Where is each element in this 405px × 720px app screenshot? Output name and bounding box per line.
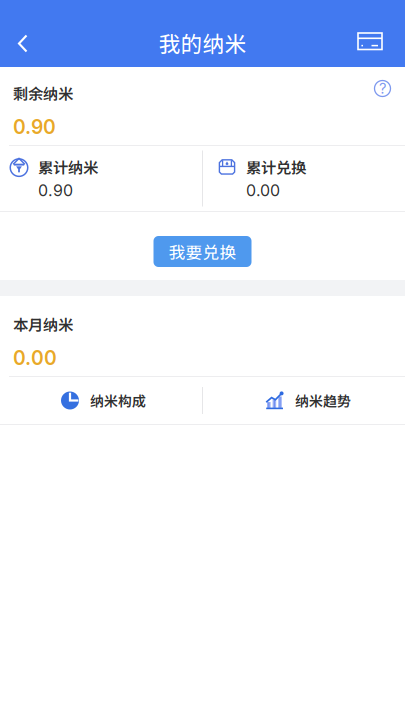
- button[interactable]: 累计兑换: [203, 146, 404, 211]
- staticText: 0.90: [13, 115, 56, 139]
- button[interactable]: Help: [374, 67, 391, 97]
- button[interactable]: 纳米趋势: [203, 377, 405, 424]
- staticText: 0.00: [13, 346, 57, 370]
- staticText: 我要兑换: [168, 239, 236, 263]
- button[interactable]: 纳米构成: [0, 377, 202, 424]
- staticText: ?: [379, 80, 386, 97]
- staticText: 累计兑换: [246, 156, 306, 178]
- staticText: 我的纳米: [158, 27, 246, 58]
- staticText: 累计纳米: [38, 156, 98, 178]
- button[interactable]: Back: [0, 0, 46, 67]
- staticText: 本月纳米: [13, 313, 73, 335]
- staticText: 纳米构成: [90, 390, 146, 411]
- button[interactable]: 我要兑换: [153, 236, 251, 267]
- staticText: 剩余纳米: [13, 82, 73, 104]
- staticText: 0.90: [38, 181, 73, 200]
- button[interactable]: 累计纳米: [1, 146, 202, 211]
- staticText: 0.00: [246, 181, 280, 200]
- button[interactable]: Bank card: [335, 0, 405, 67]
- staticText: 纳米趋势: [295, 390, 351, 411]
